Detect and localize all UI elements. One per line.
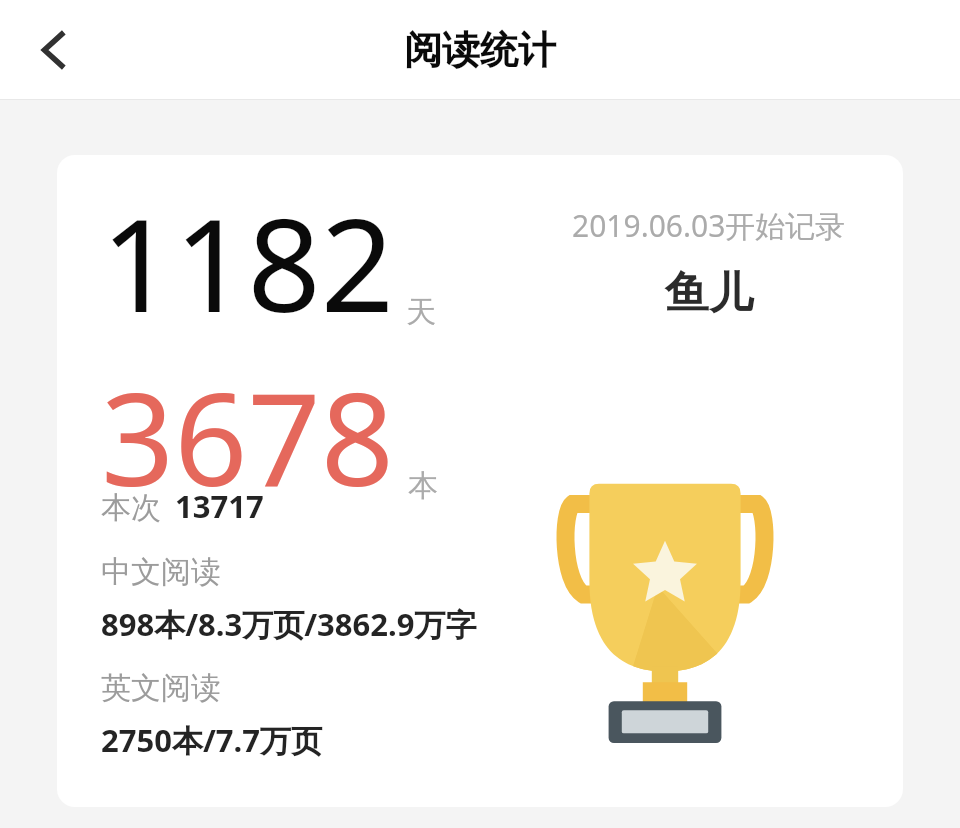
button[interactable]: 2019.06.03开始记录 [57, 155, 903, 807]
staticText: 中文阅读 [101, 553, 221, 591]
staticText: 本次 [101, 489, 161, 527]
button[interactable]: Back [12, 7, 98, 93]
staticText: 2750本/7.7万页 [101, 719, 322, 761]
staticText: 阅读统计 [404, 26, 556, 74]
staticText: 3678 [101, 349, 394, 523]
staticText: 2019.06.03开始记录 [572, 205, 846, 246]
staticText: 1182 [101, 175, 394, 349]
staticText: 898本/8.3万页/3862.9万字 [101, 603, 477, 645]
staticText: 13717 [175, 485, 264, 527]
staticText: 英文阅读 [101, 669, 221, 707]
staticText: 天 [406, 293, 436, 331]
staticText: 本 [408, 467, 438, 505]
staticText: 鱼儿 [665, 266, 753, 321]
